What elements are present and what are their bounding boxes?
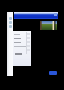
button[interactable] [13,31,31,66]
button[interactable]: Navigation item [9,25,12,28]
button[interactable]: Navigation item [9,21,12,24]
button[interactable]: Action [49,71,57,75]
button[interactable]: Navigation item [9,17,12,20]
button[interactable] [7,12,13,76]
button[interactable] [14,12,58,19]
